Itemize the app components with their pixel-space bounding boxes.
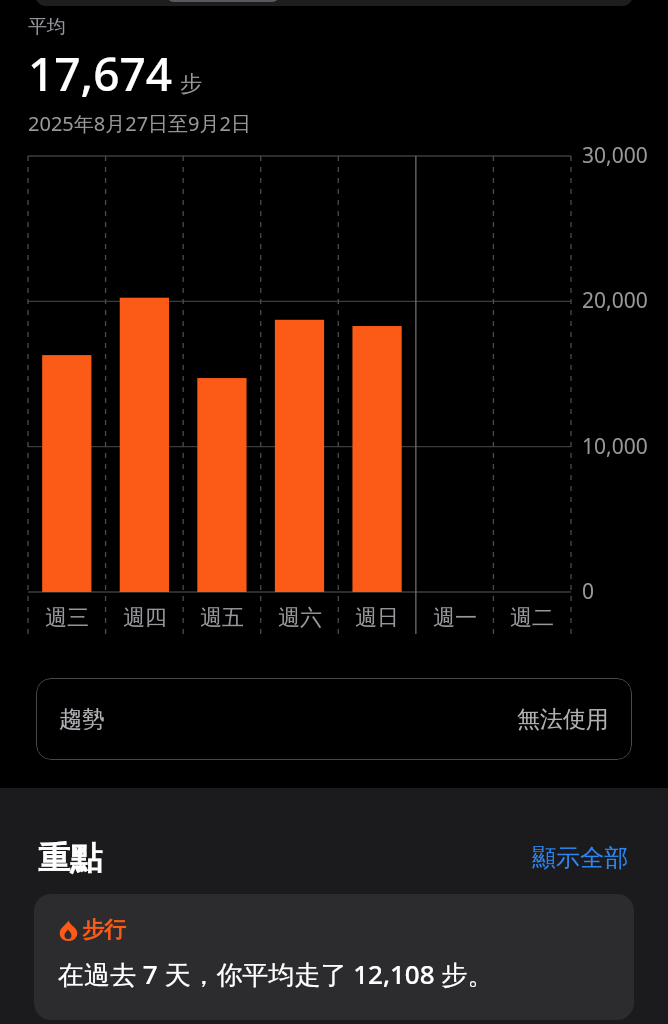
button[interactable]: 趨勢 — [36, 678, 632, 760]
button[interactable]: Range selector — [35, 0, 633, 6]
button[interactable]: 步行 — [34, 894, 634, 1020]
staticText: 週六 — [261, 604, 339, 632]
staticText: 週三 — [28, 604, 106, 632]
staticText: 0 — [582, 577, 595, 606]
staticText: 2025年8月27日至9月2日 — [28, 110, 251, 137]
staticText: 10,000 — [582, 432, 648, 461]
staticText: 重點 — [38, 838, 102, 878]
staticText: 顯示全部 — [532, 843, 628, 873]
button[interactable]: 顯示全部 — [528, 839, 632, 877]
staticText: 週二 — [493, 604, 571, 632]
staticText: 平均 — [28, 15, 66, 39]
staticText: 週五 — [183, 604, 261, 632]
staticText: 在過去 7 天，你平均走了 12,108 步。 — [58, 956, 494, 992]
staticText: 17,674 — [28, 42, 173, 105]
staticText: 趨勢 — [59, 705, 105, 734]
staticText: 週四 — [106, 604, 184, 632]
staticText: 週一 — [416, 604, 494, 632]
staticText: 無法使用 — [517, 705, 609, 734]
staticText: 步行 — [82, 916, 126, 944]
staticText: 30,000 — [582, 141, 648, 170]
staticText: 20,000 — [582, 286, 648, 315]
staticText: 週日 — [338, 604, 416, 632]
staticText: 步 — [180, 70, 202, 98]
